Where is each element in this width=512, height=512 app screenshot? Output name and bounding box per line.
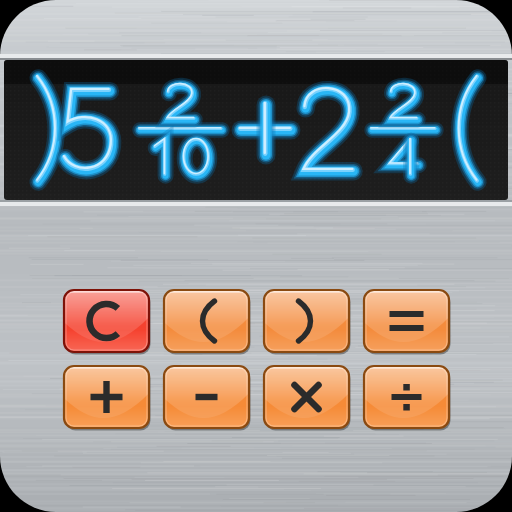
button[interactable]: Open parenthesis <box>164 290 249 352</box>
button[interactable]: Display: (5 2/10 + 2 2/4) <box>4 60 508 200</box>
button[interactable]: Plus <box>64 366 149 428</box>
button[interactable]: Multiply <box>264 366 349 428</box>
button[interactable]: Divide <box>364 366 449 428</box>
button[interactable]: Minus <box>164 366 249 428</box>
button[interactable]: Close parenthesis <box>264 290 349 352</box>
button[interactable]: Equals <box>364 290 449 352</box>
button[interactable]: Clear <box>64 290 149 352</box>
